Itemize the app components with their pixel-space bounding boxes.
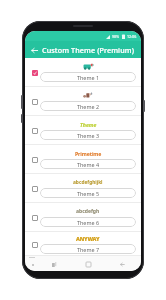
button[interactable]: Theme 5 xyxy=(40,188,136,198)
button[interactable]: Recents xyxy=(49,259,60,270)
staticText: Primetime xyxy=(75,150,102,157)
staticText: abcdefghijkl xyxy=(73,179,103,186)
staticText: 12:06 xyxy=(127,34,137,39)
staticText: Theme 6 xyxy=(77,219,99,226)
button[interactable]: Select Theme 1 xyxy=(25,58,141,87)
button[interactable]: Select Theme 5 xyxy=(29,183,40,194)
button[interactable]: Menu xyxy=(29,261,37,269)
staticText: ANYWAY xyxy=(76,235,100,242)
button[interactable]: Select Theme 6 xyxy=(25,203,141,232)
button[interactable]: Theme 7 xyxy=(40,244,136,254)
staticText: 98% xyxy=(112,34,120,39)
button[interactable]: Theme 6 xyxy=(40,217,136,227)
button[interactable]: Select Theme 4 xyxy=(25,145,141,174)
button[interactable]: Back xyxy=(28,44,40,56)
staticText: Theme 4 xyxy=(77,161,99,168)
button[interactable]: Theme 4 xyxy=(40,159,136,169)
button[interactable]: Select Theme 1 xyxy=(29,67,40,78)
button[interactable]: Select Theme 3 xyxy=(25,116,141,145)
button[interactable]: Theme 1 xyxy=(40,72,136,82)
staticText: Custom Theme (Premium) xyxy=(42,45,135,55)
staticText: Theme 7 xyxy=(77,246,99,253)
button[interactable]: Select Theme 6 xyxy=(29,212,40,223)
staticText: Theme 5 xyxy=(77,190,99,197)
button[interactable]: Back xyxy=(117,259,128,270)
staticText: Theme 2 xyxy=(77,103,99,110)
button[interactable]: Select Theme 2 xyxy=(29,96,40,107)
button[interactable]: Home xyxy=(83,259,94,270)
button[interactable]: Select Theme 7 xyxy=(25,232,141,256)
button[interactable]: Select Theme 2 xyxy=(25,87,141,116)
button[interactable]: Select Theme 7 xyxy=(29,239,40,250)
staticText: abcdefgh xyxy=(76,208,100,215)
button[interactable]: Theme 3 xyxy=(40,130,136,140)
button[interactable]: Select Theme 5 xyxy=(25,174,141,203)
button[interactable]: Select Theme 3 xyxy=(29,125,40,136)
staticText: Theme 3 xyxy=(77,132,99,139)
button[interactable]: Select Theme 4 xyxy=(29,154,40,165)
button[interactable]: Theme 2 xyxy=(40,101,136,111)
staticText: Theme 1 xyxy=(77,74,99,81)
staticText: Theme xyxy=(80,121,97,128)
